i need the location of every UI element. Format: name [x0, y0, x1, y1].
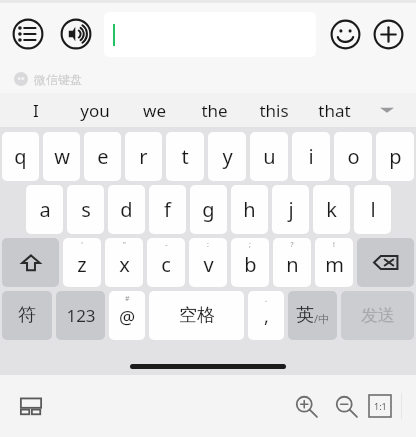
staticText: q — [14, 143, 27, 170]
staticText: s — [81, 196, 91, 223]
staticText: y — [222, 143, 233, 170]
staticText: c — [161, 251, 171, 278]
staticText: we — [143, 99, 166, 122]
staticText: v — [203, 251, 214, 278]
staticText: p — [389, 143, 402, 170]
staticText: e — [97, 143, 109, 170]
button[interactable]: this — [244, 93, 304, 127]
button[interactable]: s — [67, 185, 104, 234]
button[interactable]: you — [65, 93, 124, 127]
button[interactable]: the — [184, 93, 244, 127]
button[interactable]: r — [125, 132, 162, 181]
staticText: ; — [249, 240, 251, 250]
button[interactable]: g — [190, 185, 227, 234]
staticText: a — [39, 196, 51, 223]
button[interactable]: ! — [315, 238, 353, 287]
staticText: w — [54, 143, 70, 170]
staticText: /中 — [314, 311, 330, 326]
staticText: . — [265, 293, 268, 304]
button[interactable]: Menu — [8, 14, 48, 54]
staticText: 123 — [66, 304, 96, 327]
button[interactable]: a — [26, 185, 63, 234]
staticText: j — [288, 196, 294, 223]
button[interactable]: o — [334, 132, 372, 181]
staticText: that — [318, 99, 351, 122]
button[interactable]: 英 — [288, 291, 337, 340]
staticText: 空格 — [179, 304, 215, 327]
staticText: 英 — [296, 304, 314, 327]
staticText: # — [125, 294, 130, 304]
staticText: n — [286, 251, 299, 278]
button[interactable]: j — [272, 185, 309, 234]
button[interactable]: - — [147, 238, 185, 287]
button[interactable]: Zoom out — [329, 389, 363, 423]
staticText: I — [33, 99, 39, 122]
staticText: l — [370, 196, 376, 223]
button[interactable]: that — [304, 93, 364, 127]
staticText: i — [308, 143, 314, 170]
staticText: t — [181, 143, 189, 170]
staticText: - — [165, 240, 168, 250]
button[interactable]: Actual size — [369, 395, 391, 417]
button[interactable]: p — [376, 132, 414, 181]
button[interactable]: More suggestions — [364, 93, 410, 127]
button[interactable]: Emoji — [325, 14, 365, 54]
staticText: this — [259, 99, 289, 122]
button[interactable]: Backspace — [357, 238, 414, 287]
staticText: x — [119, 251, 130, 278]
button[interactable]: : — [189, 238, 227, 287]
button[interactable]: k — [313, 185, 350, 234]
button[interactable] — [104, 12, 316, 57]
button[interactable]: . — [248, 291, 284, 340]
staticText: ! — [333, 240, 335, 250]
staticText: 微信键盘 — [34, 72, 82, 87]
staticText: ' — [81, 240, 83, 250]
button[interactable]: y — [208, 132, 246, 181]
button[interactable]: Layout — [14, 389, 48, 423]
button[interactable]: I — [6, 93, 65, 127]
staticText: " — [123, 240, 126, 250]
button[interactable]: More — [368, 14, 408, 54]
staticText: d — [120, 196, 133, 223]
staticText: b — [244, 251, 257, 278]
staticText: r — [139, 143, 148, 170]
staticText: ? — [290, 240, 294, 250]
button[interactable]: we — [124, 93, 184, 127]
button[interactable]: h — [231, 185, 268, 234]
button[interactable]: Shift — [2, 238, 59, 287]
button[interactable]: q — [2, 132, 39, 181]
button[interactable]: Voice input — [56, 14, 96, 54]
staticText: 符 — [18, 304, 36, 327]
button[interactable]: 123 — [56, 291, 105, 340]
button[interactable]: 发送 — [341, 291, 414, 340]
staticText: m — [325, 251, 344, 278]
staticText: , — [264, 304, 269, 329]
button[interactable]: " — [105, 238, 143, 287]
staticText: z — [77, 251, 87, 278]
button[interactable]: t — [166, 132, 204, 181]
button[interactable]: u — [250, 132, 288, 181]
button[interactable]: w — [43, 132, 80, 181]
button[interactable]: Zoom in — [289, 389, 323, 423]
button[interactable]: ' — [63, 238, 101, 287]
button[interactable]: l — [354, 185, 391, 234]
button[interactable]: ; — [231, 238, 269, 287]
button[interactable]: d — [108, 185, 145, 234]
staticText: 发送 — [361, 305, 395, 326]
button[interactable]: e — [84, 132, 121, 181]
button[interactable]: f — [149, 185, 186, 234]
button[interactable]: ? — [273, 238, 311, 287]
staticText: u — [263, 143, 276, 170]
staticText: f — [164, 196, 171, 223]
staticText: k — [326, 196, 337, 223]
button[interactable]: 空格 — [149, 291, 244, 340]
staticText: h — [243, 196, 256, 223]
staticText: : — [207, 240, 209, 250]
button[interactable]: i — [292, 132, 330, 181]
staticText: g — [202, 196, 215, 223]
staticText: 1:1 — [374, 400, 387, 412]
staticText: o — [347, 143, 360, 170]
staticText: @ — [119, 305, 136, 330]
button[interactable]: # — [109, 291, 145, 340]
button[interactable]: 符 — [2, 291, 52, 340]
